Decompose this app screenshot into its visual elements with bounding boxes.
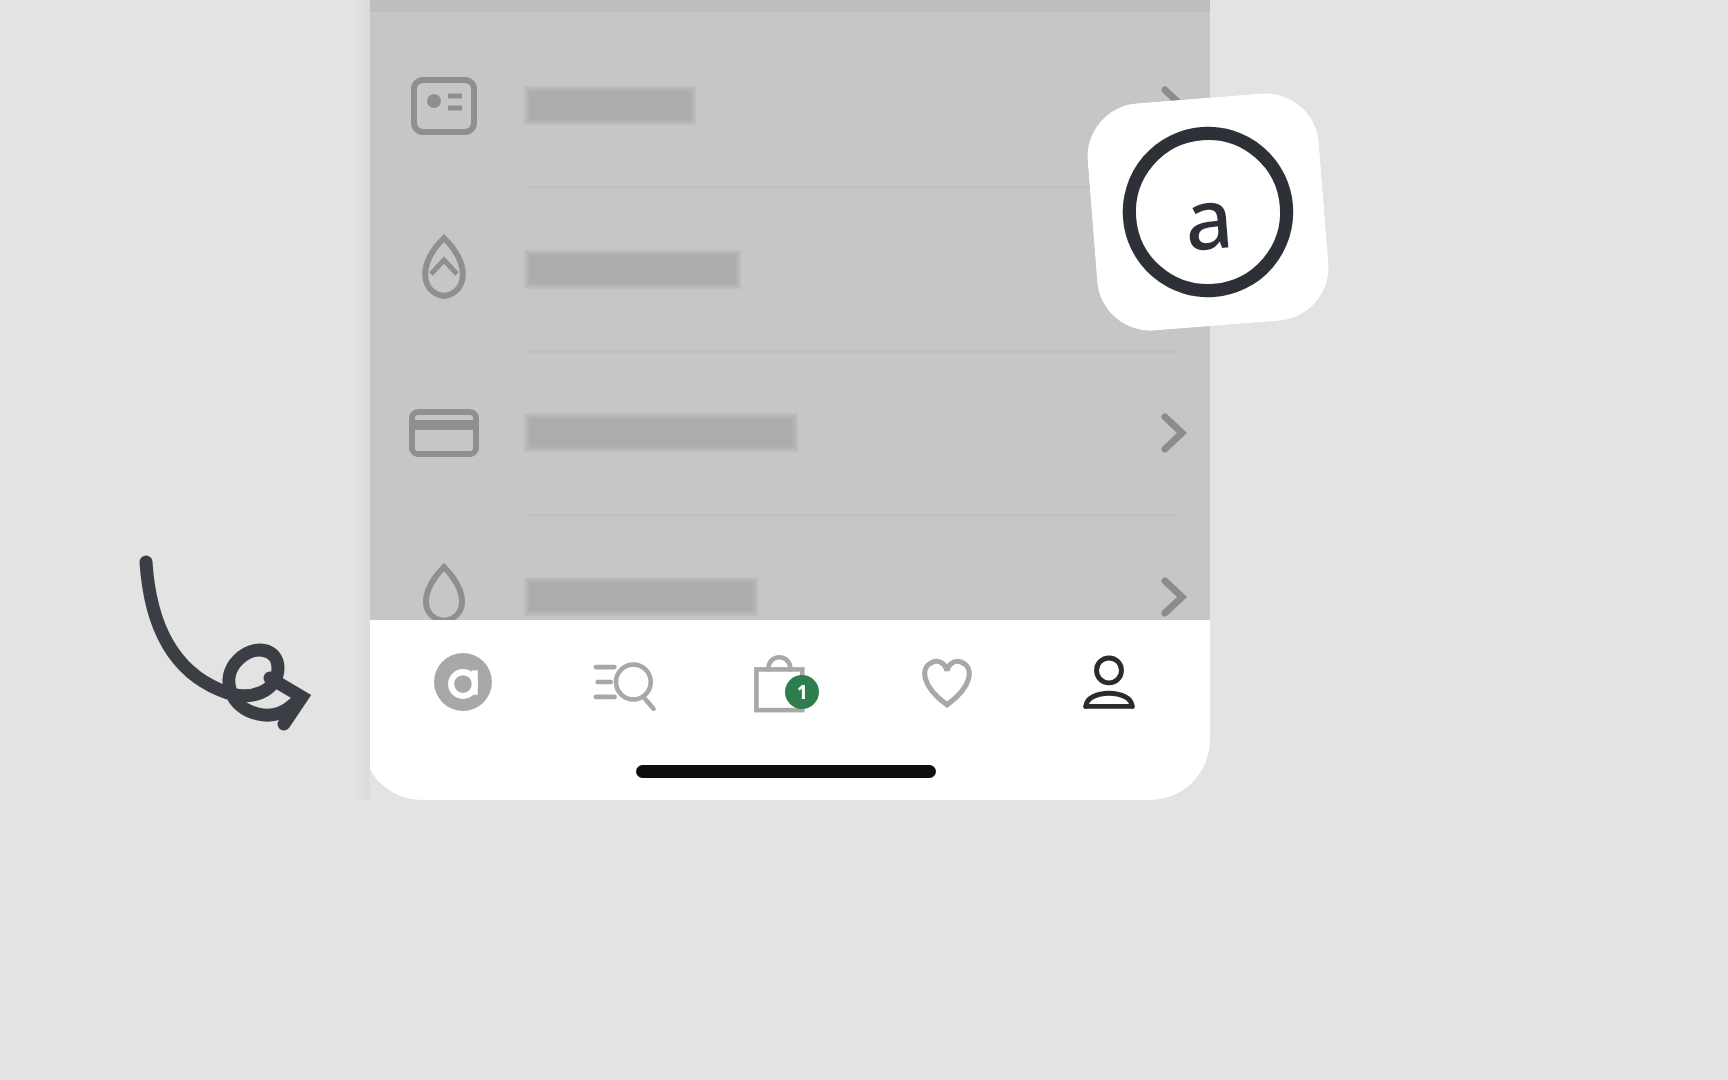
staticText: 1	[797, 679, 808, 705]
button[interactable]: Bag, 1 item	[726, 622, 846, 742]
button[interactable]: My account	[1049, 622, 1169, 742]
button[interactable]: Saved items	[887, 622, 1007, 742]
button[interactable]: ASOS app icon	[1083, 89, 1333, 335]
button[interactable]: ASOS home	[403, 622, 523, 742]
button[interactable]: Search	[565, 622, 685, 742]
staticText: a	[1180, 157, 1238, 275]
